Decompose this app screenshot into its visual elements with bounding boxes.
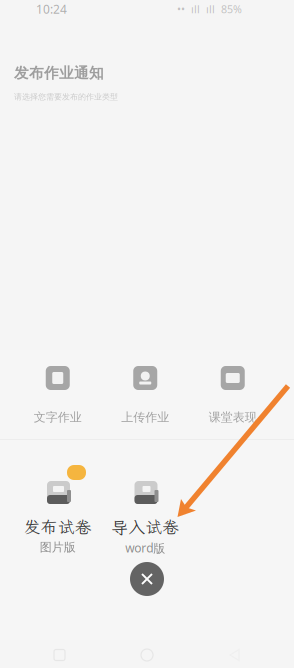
button[interactable]: 课堂表现 (189, 366, 276, 422)
staticText: 10:24 (36, 1, 67, 17)
staticText: 发布试卷 (24, 516, 92, 538)
button[interactable]: 导入试卷 (101, 459, 189, 555)
staticText: 上传作业 (121, 410, 169, 425)
staticText: 图片版 (40, 540, 76, 555)
staticText: 文字作业 (34, 410, 82, 425)
button[interactable]: 发布试卷 (14, 459, 101, 555)
staticText: word版 (125, 540, 165, 556)
staticText: 请选择您需要发布的作业类型 (14, 92, 118, 102)
staticText: •• ıll ıll 85% (177, 2, 242, 16)
staticText: 课堂表现 (209, 410, 257, 425)
button[interactable]: Close (123, 555, 171, 603)
staticText: 发布作业通知 (14, 64, 104, 82)
staticText: 导入试卷 (111, 516, 179, 538)
button[interactable]: 文字作业 (14, 366, 101, 422)
button[interactable]: 上传作业 (101, 366, 189, 422)
